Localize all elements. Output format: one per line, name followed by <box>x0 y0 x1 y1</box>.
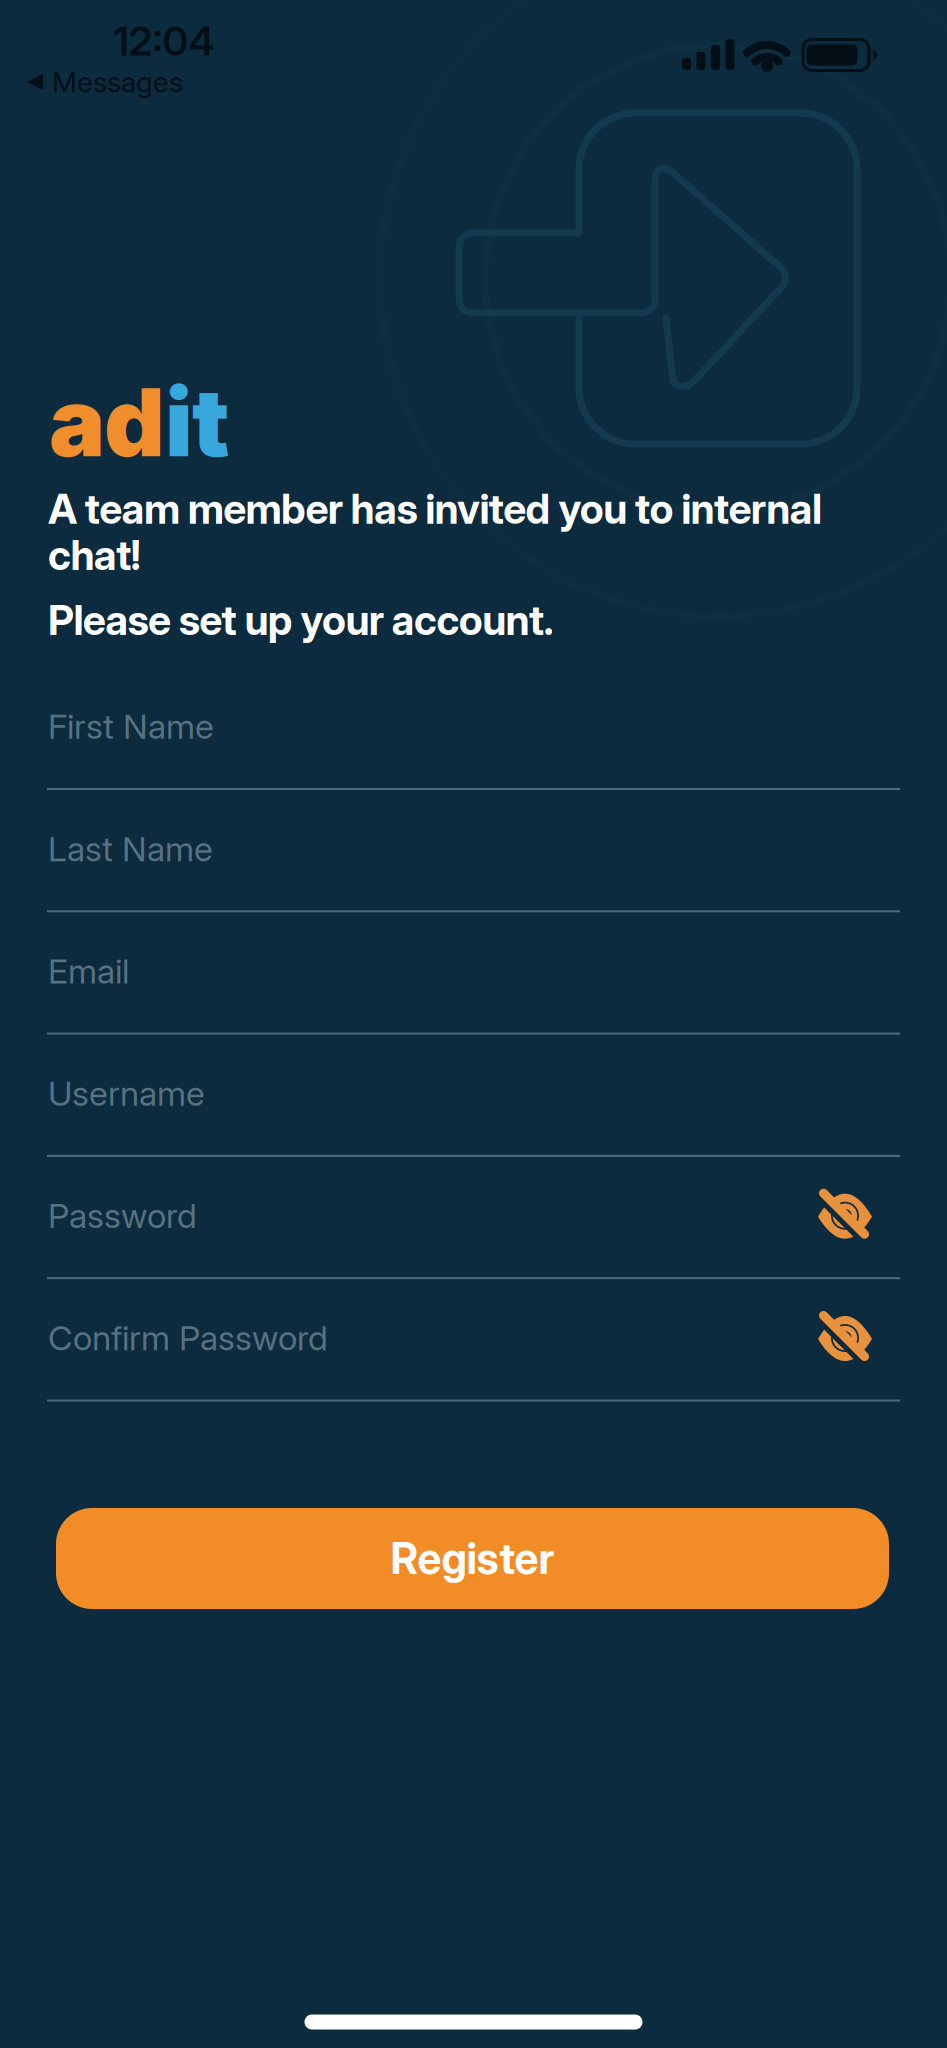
staticText: Please set up your account. <box>48 596 553 644</box>
staticText: Email <box>48 951 129 991</box>
staticText: Register <box>390 1533 554 1583</box>
staticText: Last Name <box>48 829 213 869</box>
staticText: 12:04 <box>113 17 214 65</box>
staticText: Confirm Password <box>48 1318 328 1358</box>
button[interactable]: Confirm Password <box>47 1316 900 1401</box>
button[interactable]: Password <box>47 1194 900 1279</box>
button[interactable]: First Name <box>47 705 900 790</box>
staticText: A team member has invited you to interna… <box>48 486 822 578</box>
button[interactable]: Back to Messages <box>27 65 183 98</box>
staticText: Username <box>48 1073 205 1113</box>
button[interactable]: Username <box>47 1072 900 1157</box>
staticText: it <box>165 367 230 477</box>
staticText: First Name <box>48 706 214 746</box>
staticText: Messages <box>52 65 183 98</box>
staticText: Password <box>48 1196 197 1236</box>
button[interactable]: Show Password <box>817 1191 873 1241</box>
button[interactable]: Last Name <box>47 827 900 912</box>
button[interactable]: Show Confirm Password <box>817 1313 873 1363</box>
button[interactable]: Email <box>47 950 900 1035</box>
button[interactable]: Register <box>56 1508 889 1609</box>
staticText: ad <box>49 367 165 477</box>
